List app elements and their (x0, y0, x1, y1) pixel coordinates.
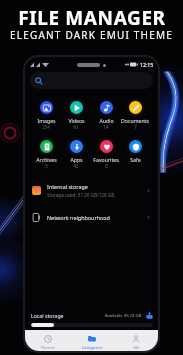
button[interactable]: Network neighbourhood (25, 205, 158, 229)
button[interactable]: Share (146, 312, 153, 319)
button[interactable]: Apps (61, 137, 91, 169)
button[interactable]: Documents (121, 98, 149, 130)
staticText: 42 (73, 163, 79, 169)
staticText: Audio (99, 117, 114, 124)
staticText: Archives (36, 156, 57, 163)
staticText: Favourites (93, 156, 119, 163)
button[interactable]: Recent (25, 330, 70, 351)
staticText: Documents (121, 117, 149, 124)
staticText: Apps (70, 156, 83, 163)
button[interactable]: Images (31, 98, 61, 130)
staticText: Safe (130, 156, 141, 163)
staticText: 12:15 (140, 61, 154, 68)
staticText: 5 (45, 163, 48, 169)
button[interactable]: Audio (91, 98, 121, 130)
button[interactable]: Search (30, 72, 153, 89)
staticText: Images (37, 117, 56, 124)
button[interactable]: Internal storage (25, 176, 158, 205)
staticText: Storage used: 31.26 GB/128 GB (47, 192, 115, 198)
button[interactable]: Videos (61, 98, 91, 130)
button[interactable]: Me (114, 330, 158, 351)
staticText: ELEGANT DARK EMUI THEME (10, 28, 173, 40)
button[interactable]: Favourites (91, 137, 121, 169)
button[interactable]: Categories (70, 330, 114, 351)
staticText: Recent (41, 345, 55, 351)
staticText: 7 (134, 124, 137, 130)
button[interactable]: Archives (31, 137, 61, 169)
staticText: Local storage (31, 312, 64, 319)
staticText: Videos (68, 117, 85, 124)
staticText: Me (133, 345, 140, 351)
button[interactable]: Safe (121, 137, 149, 169)
staticText: Network neighbourhood (47, 214, 110, 221)
staticText: FILE MANAGER (18, 5, 166, 29)
staticText: 8 (105, 163, 108, 169)
staticText: 61 (73, 124, 79, 130)
staticText: 14 (103, 124, 109, 130)
staticText: Internal storage (47, 183, 88, 190)
staticText: 254 (42, 124, 50, 130)
staticText: Categories (81, 345, 103, 351)
staticText: Available 96.74 GB (105, 313, 142, 319)
